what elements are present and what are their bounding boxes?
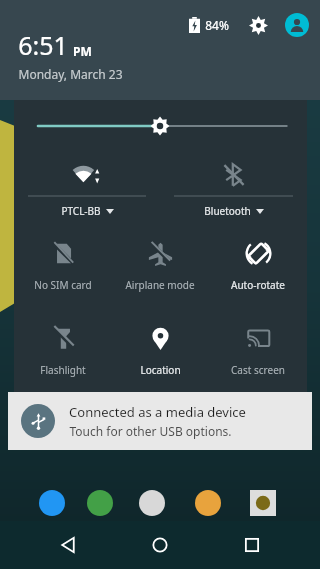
button[interactable]: Bluetooth — [160, 152, 307, 228]
staticText: 84% — [205, 17, 229, 33]
button[interactable]: Settings — [245, 12, 271, 38]
staticText: PTCL-BB — [61, 204, 101, 218]
button[interactable]: Brightness — [14, 100, 307, 152]
button[interactable]: Wi-Fi — [14, 152, 160, 228]
staticText: 6:51 — [18, 28, 68, 62]
button[interactable]: Home — [136, 521, 184, 569]
staticText: Flashlight — [40, 363, 86, 377]
staticText: Airplane mode — [125, 278, 195, 292]
button[interactable]: Connected as a media device — [8, 392, 312, 450]
staticText: Cast screen — [231, 363, 285, 377]
button[interactable]: No SIM card — [14, 228, 111, 313]
staticText: Connected as a media device — [69, 403, 246, 421]
button[interactable]: Back — [44, 521, 92, 569]
staticText: Auto-rotate — [231, 278, 285, 292]
button[interactable]: Airplane mode — [111, 228, 209, 313]
staticText: Bluetooth — [204, 204, 251, 218]
staticText: Monday, March 23 — [18, 66, 123, 82]
button[interactable]: Recent apps — [228, 521, 276, 569]
staticText: Touch for other USB options. — [69, 423, 232, 439]
staticText: No SIM card — [34, 278, 92, 292]
staticText: PM — [73, 43, 92, 59]
button[interactable]: Location — [111, 313, 209, 398]
button[interactable]: User profile — [284, 12, 310, 38]
button[interactable]: Auto-rotate — [209, 228, 307, 313]
button[interactable]: Cast screen — [209, 313, 307, 398]
staticText: Location — [140, 363, 181, 377]
button[interactable]: Flashlight — [14, 313, 111, 398]
